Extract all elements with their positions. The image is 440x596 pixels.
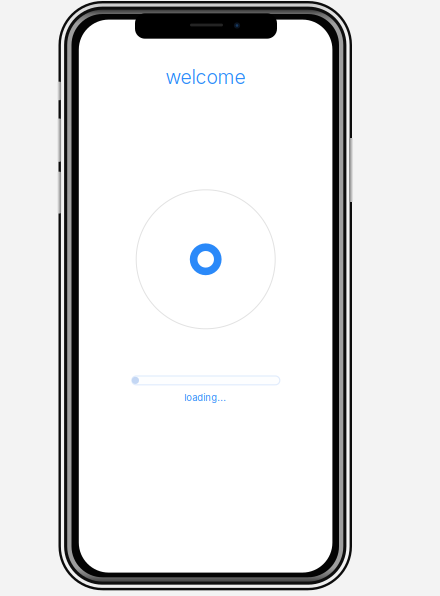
staticText: loading...: [184, 392, 226, 403]
staticText: welcome: [166, 65, 246, 89]
